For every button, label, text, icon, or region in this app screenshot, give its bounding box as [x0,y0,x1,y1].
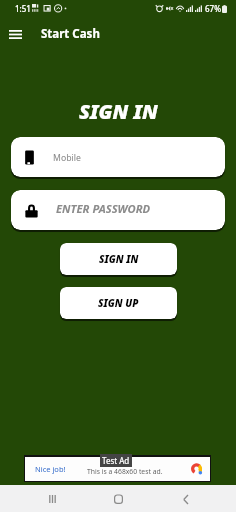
button[interactable]: ENTER PASSWORD [11,190,225,230]
staticText: Mobile [53,152,81,164]
button[interactable]: Back [172,486,198,512]
button[interactable]: SIGN UP [60,287,177,319]
staticText: SIGN IN [99,252,139,266]
button[interactable]: Home [105,486,131,512]
staticText: Test Ad [102,455,130,466]
staticText: Start Cash [41,26,100,42]
staticText: SIGN UP [98,296,139,310]
staticText: 1:51 [15,3,31,14]
button[interactable]: Mobile [11,137,225,177]
staticText: SIGN IN [79,98,158,120]
staticText: This is a 468x60 test ad. [87,467,163,476]
staticText: Nice job! [35,464,66,474]
button[interactable]: Nice job! [25,457,210,481]
staticText: 67% [205,3,221,14]
staticText: ENTER PASSWORD [56,201,151,216]
button[interactable]: Menu [2,21,28,47]
button[interactable]: SIGN IN [60,243,177,275]
button[interactable]: Recents [39,486,65,512]
